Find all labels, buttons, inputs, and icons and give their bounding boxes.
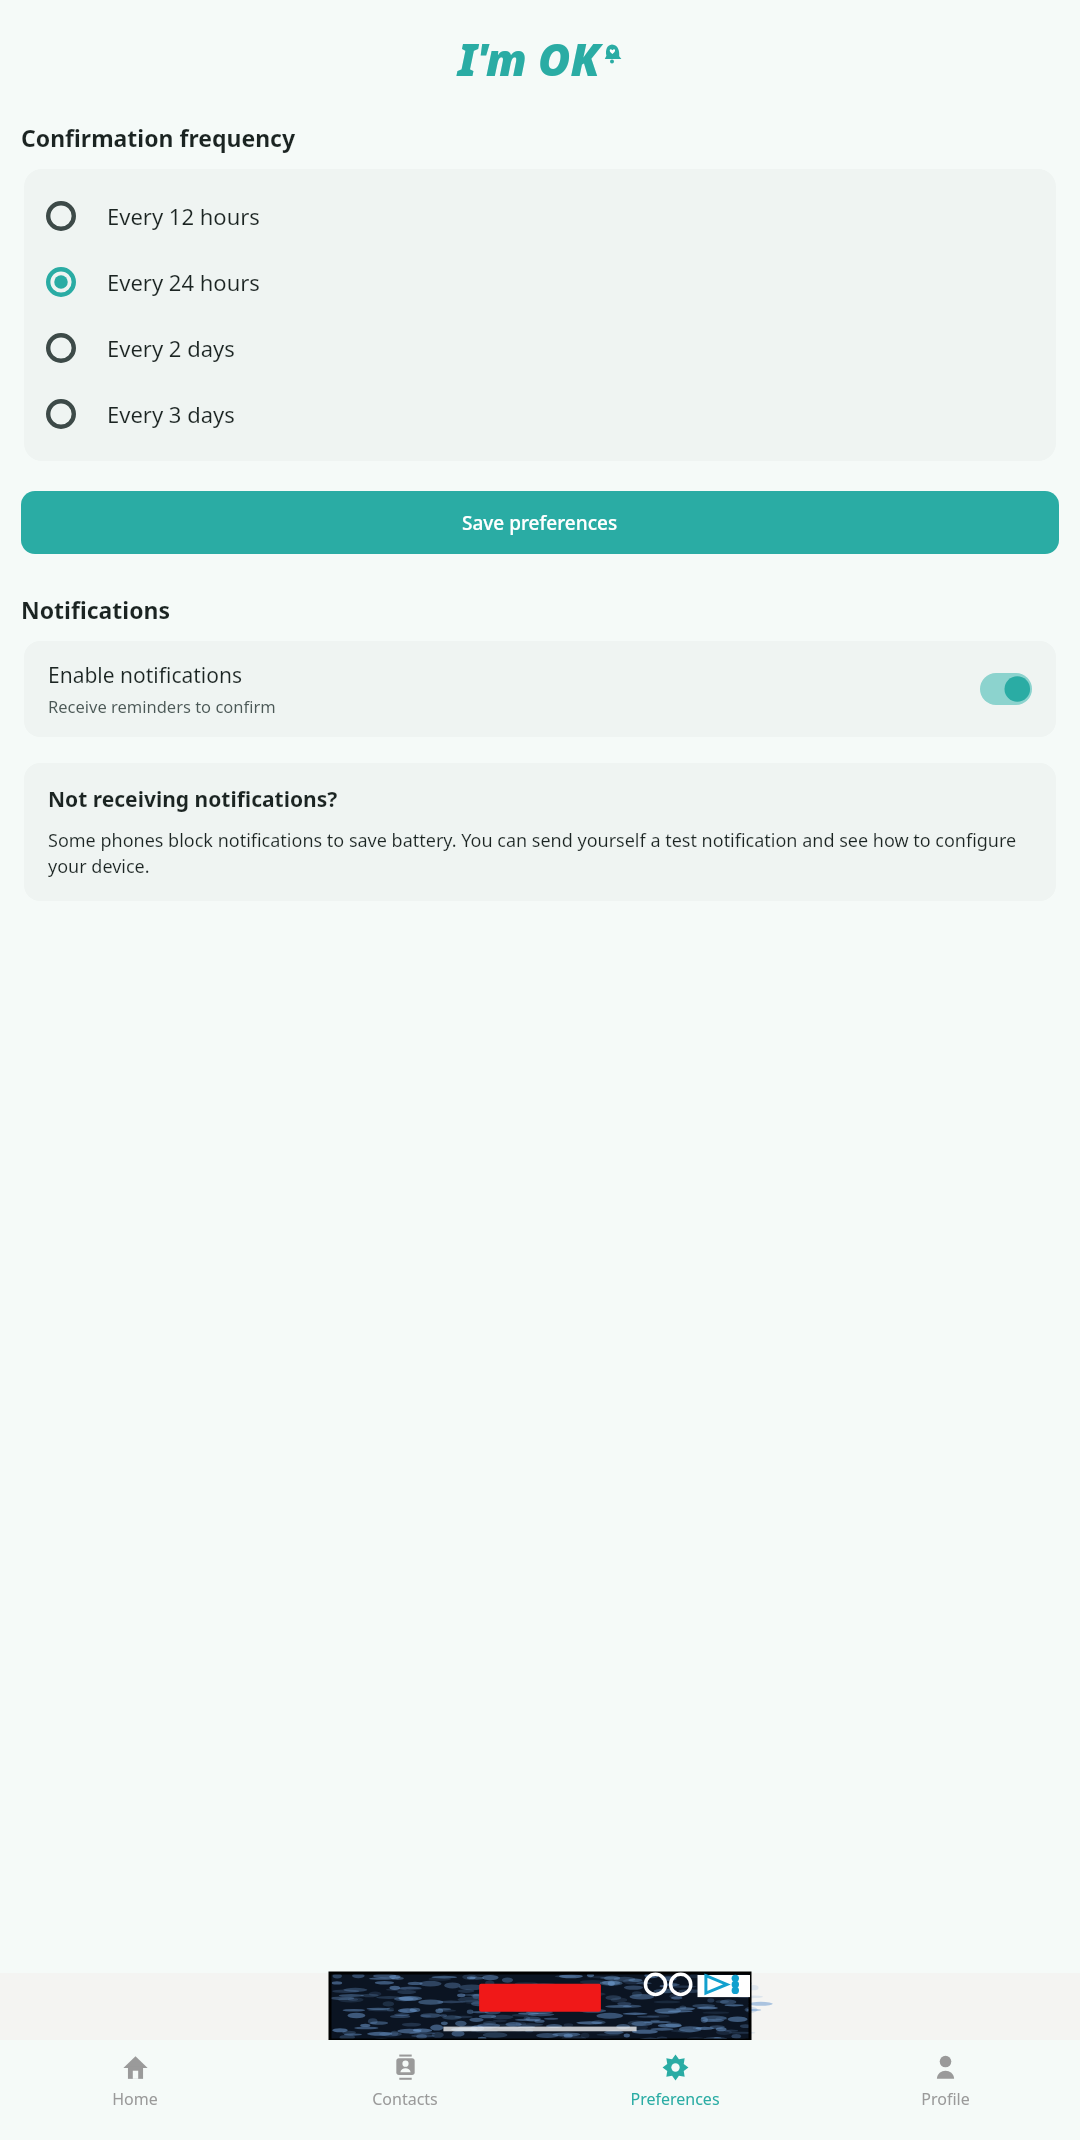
staticText: I'm OK bbox=[458, 29, 600, 89]
button[interactable]: Profile bbox=[810, 2040, 1080, 2140]
staticText: Enable notifications bbox=[48, 661, 242, 690]
staticText: Some phones block notifications to save … bbox=[48, 828, 1032, 879]
staticText: Home bbox=[112, 2088, 158, 2110]
staticText: Preferences bbox=[630, 2088, 720, 2110]
button[interactable]: Preferences bbox=[540, 2040, 810, 2140]
button[interactable]: Toggle notifications bbox=[980, 673, 1032, 705]
button[interactable]: Every 12 hours bbox=[24, 183, 1056, 249]
button[interactable]: Save preferences bbox=[21, 491, 1059, 554]
staticText: Every 2 days bbox=[107, 333, 235, 363]
button[interactable]: Home bbox=[0, 2040, 270, 2140]
staticText: Every 24 hours bbox=[107, 267, 260, 297]
button[interactable]: Every 24 hours bbox=[24, 249, 1056, 315]
staticText: Save preferences bbox=[462, 510, 618, 536]
staticText: Confirmation frequency bbox=[21, 122, 296, 153]
staticText: Not receiving notifications? bbox=[48, 785, 338, 814]
button[interactable]: Every 2 days bbox=[24, 315, 1056, 381]
staticText: Notifications bbox=[21, 594, 171, 625]
staticText: Profile bbox=[921, 2088, 970, 2110]
staticText: Every 12 hours bbox=[107, 201, 260, 231]
button[interactable]: Enable notifications bbox=[24, 641, 1056, 737]
button[interactable] bbox=[330, 1973, 750, 2040]
staticText: Contacts bbox=[372, 2088, 438, 2110]
staticText: Every 3 days bbox=[107, 399, 235, 429]
staticText: Receive reminders to confirm bbox=[48, 695, 276, 717]
button[interactable]: Contacts bbox=[270, 2040, 540, 2140]
button[interactable]: Every 3 days bbox=[24, 381, 1056, 447]
